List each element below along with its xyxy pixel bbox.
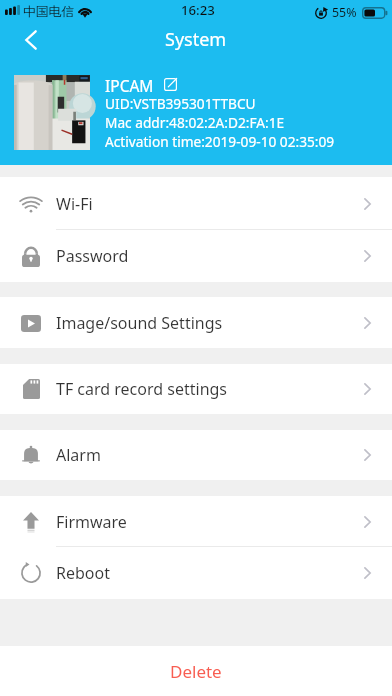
staticText: 16:23 bbox=[181, 1, 215, 19]
button[interactable]: Password bbox=[0, 230, 392, 282]
button[interactable]: Firmware bbox=[0, 496, 392, 547]
button[interactable]: Back bbox=[0, 21, 53, 59]
staticText: Wi-Fi bbox=[56, 193, 93, 215]
button[interactable]: Edit camera name bbox=[162, 76, 178, 92]
staticText: TF card record settings bbox=[56, 378, 228, 400]
staticText: Alarm bbox=[56, 444, 101, 466]
staticText: UID:VSTB395301TTBCU bbox=[105, 94, 256, 113]
staticText: Reboot bbox=[56, 562, 110, 584]
staticText: Password bbox=[56, 245, 129, 267]
staticText: 55% bbox=[332, 4, 357, 21]
staticText: Activation time:2019-09-10 02:35:09 bbox=[105, 132, 335, 151]
staticText: Firmware bbox=[56, 511, 127, 533]
staticText: System bbox=[165, 27, 227, 52]
staticText: IPCAM bbox=[105, 75, 154, 93]
button[interactable]: Wi-Fi bbox=[0, 177, 392, 230]
button[interactable]: Delete bbox=[0, 646, 392, 696]
staticText: Delete bbox=[170, 660, 222, 683]
button[interactable]: Reboot bbox=[0, 547, 392, 599]
staticText: Mac addr:48:02:2A:D2:FA:1E bbox=[105, 113, 285, 132]
button[interactable]: Alarm bbox=[0, 430, 392, 480]
button[interactable]: Image/sound Settings bbox=[0, 297, 392, 348]
staticText: 中国电信 bbox=[23, 4, 75, 20]
staticText: Image/sound Settings bbox=[56, 312, 223, 334]
button[interactable]: TF card record settings bbox=[0, 364, 392, 414]
